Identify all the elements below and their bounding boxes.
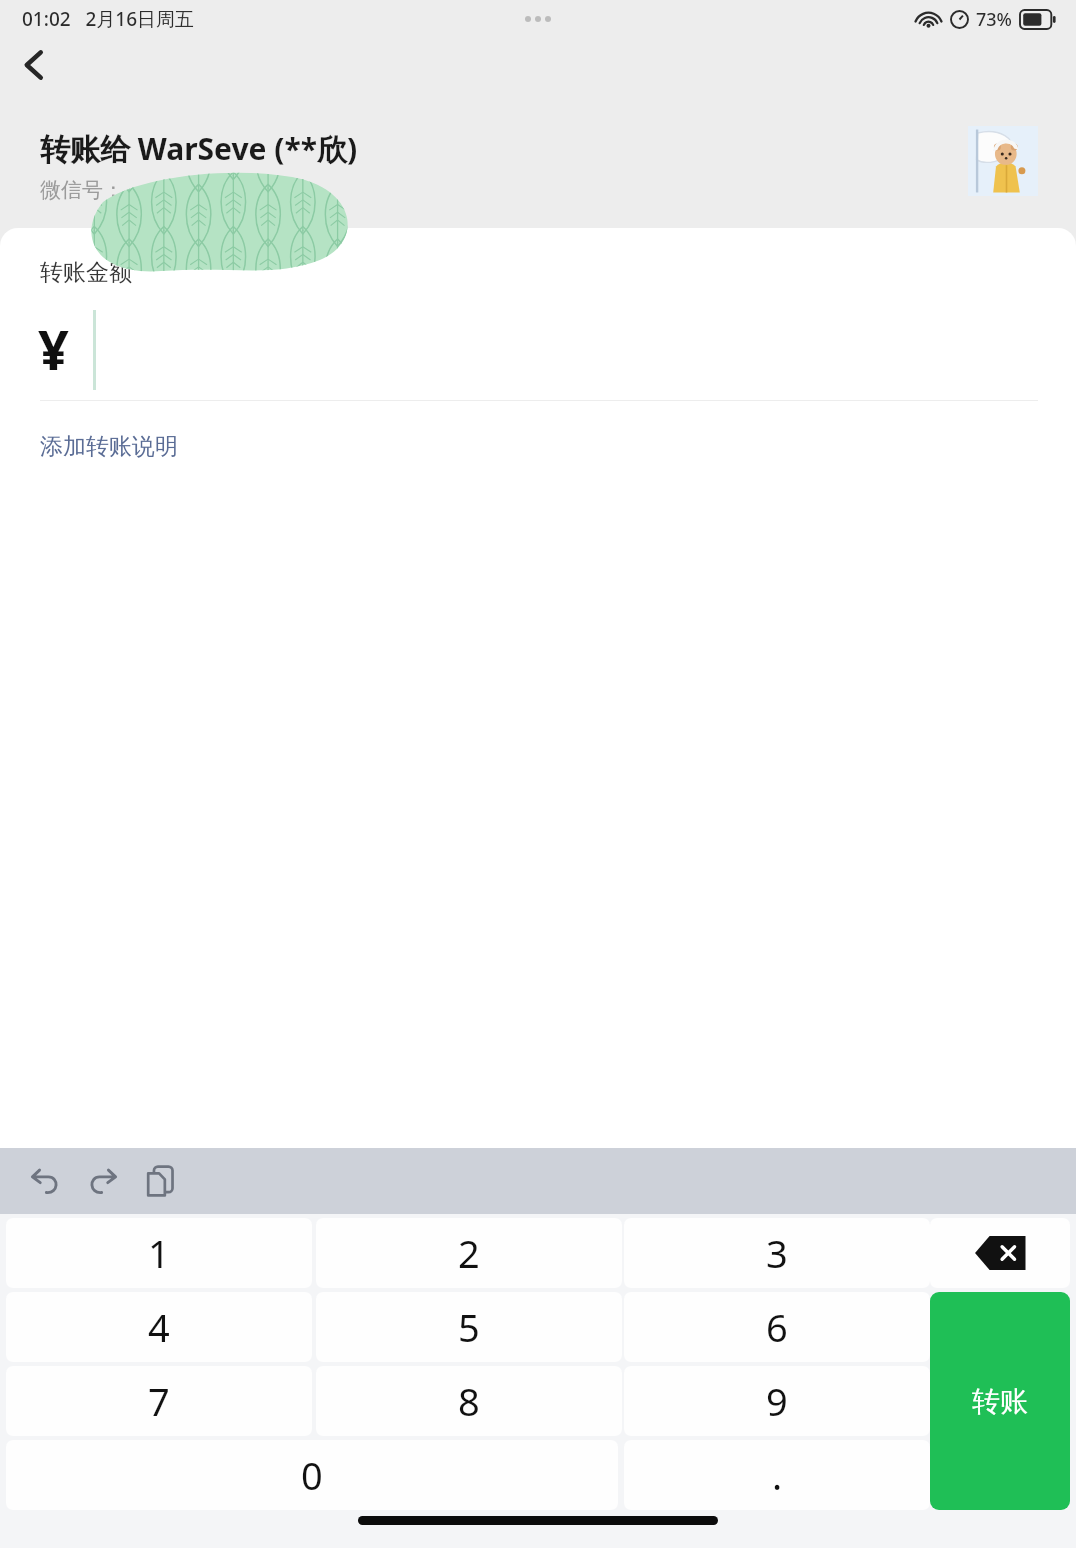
button[interactable]: 删除 — [930, 1218, 1070, 1288]
staticText: 添加转账说明 — [40, 432, 178, 461]
button[interactable]: 2 — [316, 1218, 622, 1288]
staticText: 9 — [766, 1375, 788, 1427]
staticText: 4 — [148, 1301, 170, 1353]
button[interactable]: 7 — [6, 1366, 312, 1436]
staticText: 0 — [301, 1449, 323, 1501]
button[interactable]: 5 — [316, 1292, 622, 1362]
button[interactable]: 撤销 — [16, 1152, 74, 1210]
staticText: 微信号： — [40, 177, 124, 203]
staticText: 转账给 WarSeve (**欣) — [40, 128, 358, 169]
button[interactable]: 9 — [624, 1366, 930, 1436]
button[interactable]: 转账 — [930, 1292, 1070, 1510]
staticText: 8 — [458, 1375, 480, 1427]
staticText: 5 — [458, 1301, 480, 1353]
button[interactable]: 头像 — [968, 126, 1038, 196]
staticText: ¥ — [38, 312, 69, 386]
button[interactable]: 添加转账说明 — [32, 424, 186, 469]
staticText: 6 — [766, 1301, 788, 1353]
button[interactable]: 0 — [6, 1440, 618, 1510]
staticText: 转账 — [972, 1384, 1028, 1419]
button[interactable]: . — [624, 1440, 930, 1510]
button[interactable]: 返回 — [2, 36, 66, 94]
button[interactable]: 6 — [624, 1292, 930, 1362]
button[interactable]: 剪贴板 — [132, 1152, 190, 1210]
staticText: 1 — [148, 1227, 170, 1279]
button[interactable]: 8 — [316, 1366, 622, 1436]
button[interactable]: 1 — [6, 1218, 312, 1288]
staticText: 01:02 2月16日周五 — [22, 6, 195, 32]
staticText: 7 — [148, 1375, 170, 1427]
staticText: 转账金额 — [40, 258, 132, 287]
staticText: . — [772, 1449, 783, 1501]
button[interactable]: 3 — [624, 1218, 930, 1288]
staticText: 3 — [766, 1227, 788, 1279]
button[interactable]: 重做 — [74, 1152, 132, 1210]
staticText: 2 — [458, 1227, 480, 1279]
staticText: 73% — [976, 7, 1012, 32]
button[interactable]: 4 — [6, 1292, 312, 1362]
